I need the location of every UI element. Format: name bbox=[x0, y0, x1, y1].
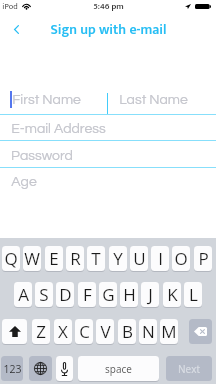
button[interactable]: Last Name bbox=[108, 88, 216, 114]
staticText: C bbox=[79, 320, 90, 343]
button[interactable]: B bbox=[118, 319, 136, 344]
staticText: J bbox=[148, 283, 153, 306]
staticText: Next bbox=[178, 362, 200, 376]
button[interactable]: A bbox=[14, 282, 32, 307]
button[interactable]: J bbox=[141, 282, 159, 307]
staticText: 5:46 pm bbox=[93, 0, 124, 13]
staticText: Q bbox=[4, 247, 18, 270]
staticText: space bbox=[105, 362, 132, 376]
staticText: Last Name bbox=[119, 93, 188, 107]
button[interactable]: Back bbox=[4, 16, 28, 42]
staticText: Z bbox=[36, 320, 46, 343]
staticText: B bbox=[122, 320, 133, 343]
button[interactable]: F bbox=[78, 282, 96, 307]
button[interactable]: C bbox=[75, 319, 93, 344]
staticText: M bbox=[161, 320, 177, 343]
button[interactable]: I bbox=[151, 246, 169, 271]
staticText: T bbox=[91, 247, 101, 270]
button[interactable]: Next bbox=[166, 356, 212, 381]
button[interactable]: First Name bbox=[0, 88, 216, 114]
staticText: X bbox=[58, 320, 68, 343]
button[interactable]: D bbox=[56, 282, 74, 307]
button[interactable]: Password bbox=[0, 142, 216, 167]
staticText: L bbox=[189, 283, 198, 306]
button[interactable]: H bbox=[120, 282, 138, 307]
staticText: U bbox=[133, 247, 146, 270]
button[interactable]: M bbox=[160, 319, 178, 344]
button[interactable]: Age bbox=[0, 168, 216, 193]
button[interactable]: V bbox=[96, 319, 114, 344]
button[interactable]: Dictate bbox=[56, 356, 73, 381]
button[interactable]: W bbox=[23, 246, 41, 271]
button[interactable]: space bbox=[78, 356, 159, 381]
button[interactable]: Shift bbox=[2, 319, 27, 344]
staticText: I bbox=[158, 247, 163, 270]
button[interactable]: N bbox=[139, 319, 157, 344]
staticText: S bbox=[39, 283, 49, 306]
staticText: E bbox=[49, 247, 59, 270]
staticText: First Name bbox=[12, 93, 81, 107]
button[interactable]: E-mail Address bbox=[0, 115, 216, 140]
button[interactable]: Z bbox=[32, 319, 50, 344]
button[interactable]: Change keyboard bbox=[29, 356, 52, 381]
button[interactable]: Y bbox=[109, 246, 127, 271]
staticText: A bbox=[18, 283, 29, 306]
button[interactable]: X bbox=[54, 319, 72, 344]
button[interactable]: Q bbox=[2, 246, 20, 271]
staticText: W bbox=[24, 247, 40, 270]
staticText: H bbox=[123, 283, 136, 306]
button[interactable]: T bbox=[87, 246, 105, 271]
button[interactable]: K bbox=[163, 282, 181, 307]
staticText: G bbox=[102, 283, 115, 306]
staticText: Y bbox=[113, 247, 123, 270]
staticText: Password bbox=[11, 149, 73, 163]
button[interactable]: O bbox=[172, 246, 190, 271]
staticText: 123 bbox=[3, 362, 22, 376]
staticText: Age bbox=[11, 175, 37, 189]
staticText: iPod bbox=[2, 0, 18, 14]
button[interactable]: Delete bbox=[189, 319, 212, 344]
button[interactable]: P bbox=[194, 246, 212, 271]
staticText: Sign up with e-mail bbox=[50, 18, 167, 41]
staticText: O bbox=[174, 247, 188, 270]
staticText: E-mail Address bbox=[11, 122, 106, 136]
button[interactable]: U bbox=[130, 246, 148, 271]
staticText: V bbox=[100, 320, 111, 343]
button[interactable]: 123 bbox=[1, 356, 23, 381]
staticText: K bbox=[167, 283, 178, 306]
staticText: R bbox=[70, 247, 81, 270]
staticText: F bbox=[83, 283, 92, 306]
button[interactable]: G bbox=[99, 282, 117, 307]
button[interactable]: L bbox=[184, 282, 202, 307]
staticText: P bbox=[198, 247, 209, 270]
button[interactable]: S bbox=[35, 282, 53, 307]
button[interactable]: E bbox=[45, 246, 63, 271]
button[interactable]: R bbox=[66, 246, 84, 271]
staticText: D bbox=[59, 283, 72, 306]
staticText: N bbox=[142, 320, 155, 343]
